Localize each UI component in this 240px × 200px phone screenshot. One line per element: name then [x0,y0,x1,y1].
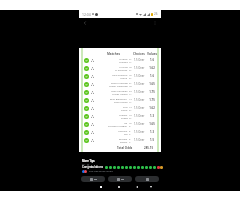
staticText: Congratulations [82,165,104,169]
staticText: 4 [129,140,131,143]
button[interactable]: Bray Blackburn [84,96,158,104]
button[interactable]: Like [81,176,105,182]
staticText: 8 [129,137,131,140]
staticText: 1.65 [146,122,158,126]
button[interactable]: More options [151,19,159,27]
staticText: 24 [129,89,132,92]
staticText: 1.5 Over [132,98,146,102]
staticText: W Darlenik [115,68,128,71]
staticText: 12:04 [82,12,91,17]
staticText: U Wilsal [119,65,128,68]
staticText: 1.5 Over [132,66,146,70]
staticText: Portsent Unagan [108,124,128,127]
staticText: 14 [129,97,132,100]
staticText: AB [124,121,128,124]
staticText: 1.5 Over [132,58,146,62]
staticText: 31 [129,57,132,60]
staticText: Bromin [119,137,128,140]
button[interactable]: Home [116,184,121,189]
staticText: Aalbunk [118,129,128,132]
staticText: Matches [95,52,132,56]
staticText: 1.5 Over [132,82,146,86]
button[interactable]: Arsenal [84,56,158,64]
staticText: 71 [129,60,132,63]
staticText: 26 [154,12,158,16]
staticText: Raslex [120,140,128,143]
staticText: 16 [129,121,132,124]
button[interactable]: Thabex [84,112,158,120]
button[interactable]: Roscra Helsinki [84,80,158,88]
staticText: 21 [129,108,132,111]
staticText: Thabex [119,113,128,116]
staticText: 1.62 [146,66,158,70]
staticText: ves [124,132,128,135]
staticText: 6 [129,129,131,132]
button[interactable]: Recents [98,184,103,189]
staticText: 31 [129,116,132,119]
staticText: Chelsea [119,60,128,63]
staticText: 1.5 Over [132,138,146,142]
staticText: Roscra Helsinki [111,81,128,84]
staticText: 18 [129,65,132,68]
staticText: 31 [129,68,132,71]
staticText: 1.5 Over [132,114,146,118]
button[interactable]: Plus [84,104,158,112]
staticText: Total Odds [117,146,133,150]
staticText: 1.65 [146,82,158,86]
staticText: Plus [123,105,128,108]
staticText: 21 [129,81,132,84]
button[interactable]: Share [135,176,159,182]
staticText: 1.5 Over [132,90,146,94]
staticText: 21 [129,76,132,79]
staticText: Arsenal [119,57,128,60]
staticText: 285.15 [144,146,154,150]
staticText: 1.62 [146,106,158,110]
staticText: Choices [132,52,146,56]
staticText: Trasby United [112,92,128,95]
staticText: Vidik Nordalen [111,89,128,92]
staticText: Kalkis [121,108,128,111]
staticText: Alpina [120,76,128,79]
staticText: Values [146,52,158,56]
staticText: Bray Blackburn [110,97,128,100]
staticText: 1.6 [146,74,158,78]
button[interactable]: Total Fontana [84,72,158,80]
staticText: 9 [129,124,131,127]
staticText: 16 [129,73,132,76]
staticText: 7h · [82,163,87,166]
button[interactable]: Back [81,19,89,27]
button[interactable]: Vidik Nordalen [84,88,158,96]
staticText: 1.5 [146,138,158,142]
staticText: 1.6 [146,58,158,62]
staticText: Plus Tips and 96 others [89,170,113,173]
button[interactable]: Bromin [84,136,158,144]
staticText: 14 [129,105,132,108]
staticText: Draga [121,116,128,119]
button[interactable]: U Wilsal [84,64,158,72]
staticText: 1.75 [146,90,158,94]
staticText: More Tips [82,159,95,163]
button[interactable]: AB [84,120,158,128]
staticText: Griffin Capetown [109,84,128,87]
button[interactable]: Back [134,184,139,189]
staticText: 1.5 Over [132,74,146,78]
staticText: 1.5 Over [132,122,146,126]
staticText: 1.5 Over [132,130,146,134]
staticText: Free Hreugs [114,100,128,103]
staticText: 1.3 [146,130,158,134]
button[interactable]: Comment [108,176,132,182]
staticText: 1.75 [146,98,158,102]
staticText: 71 [129,100,132,103]
staticText: Total Fontana [112,73,128,76]
staticText: 3 [129,132,131,135]
staticText: 19 [129,113,132,116]
button[interactable]: Hide keyboard [148,184,153,189]
button[interactable]: Aalbunk [84,128,158,136]
staticText: 1.5 Over [132,106,146,110]
staticText: 18 [129,84,132,87]
staticText: 11 [129,92,132,95]
staticText: 1.3 [146,114,158,118]
